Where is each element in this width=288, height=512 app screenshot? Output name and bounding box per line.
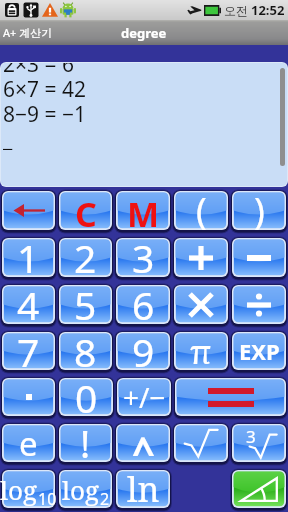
staticText: 7 — [17, 325, 40, 378]
button[interactable]: Backspace — [2, 191, 55, 230]
staticText: 0 — [75, 371, 98, 424]
button[interactable] — [174, 285, 228, 324]
button[interactable]: 8 — [59, 332, 112, 370]
staticText: 8 — [74, 325, 97, 378]
button[interactable]: 5 — [59, 285, 112, 324]
button[interactable]: log — [59, 470, 112, 508]
staticText: 3 — [132, 231, 155, 284]
button[interactable]: EXP — [232, 332, 286, 370]
staticText: π — [190, 329, 212, 374]
button[interactable]: C — [59, 191, 112, 230]
button[interactable] — [2, 378, 55, 416]
staticText: ) — [254, 186, 265, 235]
button[interactable] — [232, 285, 286, 324]
button[interactable]: Graph — [232, 470, 286, 508]
button[interactable]: 6 — [116, 285, 170, 324]
button[interactable]: 7 — [2, 332, 55, 370]
button[interactable]: π — [174, 332, 228, 370]
staticText: EXP — [239, 336, 280, 366]
button[interactable]: 4 — [2, 285, 55, 324]
button[interactable]: log — [2, 470, 55, 508]
staticText: ( — [196, 186, 207, 235]
staticText: 10 — [38, 488, 57, 510]
button[interactable]: 2 — [59, 238, 112, 277]
button[interactable] — [174, 238, 228, 277]
staticText: 6 — [132, 278, 155, 331]
button[interactable]: 1 — [2, 238, 55, 277]
staticText: 3 — [246, 425, 256, 448]
staticText: 2×3 = 6 — [3, 63, 74, 75]
button[interactable]: +/− — [117, 378, 171, 416]
staticText: _ — [3, 125, 13, 150]
button[interactable]: ) — [232, 191, 286, 230]
staticText: 오전 — [224, 3, 248, 18]
button[interactable]: ( — [174, 191, 228, 230]
button[interactable] — [174, 424, 228, 462]
button[interactable]: 9 — [116, 332, 170, 370]
staticText: 12:52 — [251, 1, 285, 19]
staticText: C — [75, 191, 97, 230]
staticText: 6×7 = 42 — [3, 75, 86, 100]
staticText: 9 — [132, 325, 155, 378]
staticText: 4 — [17, 278, 40, 331]
button[interactable]: M — [116, 191, 170, 230]
button[interactable] — [232, 238, 286, 277]
staticText: 2 — [74, 231, 97, 284]
button[interactable]: 3 — [116, 238, 170, 277]
staticText: 8−9 = −1 — [3, 100, 86, 125]
staticText: e — [19, 421, 38, 466]
staticText: 2 — [100, 488, 110, 510]
staticText: ^ — [132, 423, 155, 477]
staticText: 5 — [74, 278, 97, 331]
staticText: M — [127, 191, 160, 230]
staticText: ln — [127, 466, 160, 512]
staticText: log — [0, 472, 38, 507]
staticText: A+ 계산기 — [3, 25, 53, 40]
staticText: log — [62, 472, 100, 507]
button[interactable]: e — [2, 424, 55, 462]
button[interactable]: 0 — [59, 378, 113, 416]
staticText: 1 — [17, 231, 40, 284]
staticText: degree — [121, 24, 167, 42]
button[interactable]: 3 — [232, 424, 286, 462]
staticText: ! — [80, 417, 91, 469]
button[interactable]: ln — [116, 470, 170, 508]
staticText: +/− — [123, 378, 166, 416]
button[interactable]: ^ — [116, 424, 170, 462]
button[interactable] — [175, 378, 286, 416]
button[interactable]: ! — [59, 424, 112, 462]
